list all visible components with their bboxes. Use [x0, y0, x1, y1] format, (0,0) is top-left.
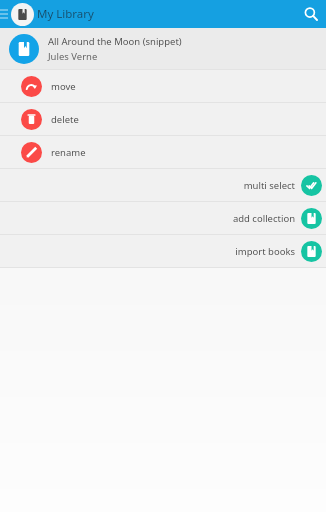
- button[interactable]: add collection: [0, 202, 326, 234]
- staticText: My Library: [37, 6, 94, 22]
- staticText: add collection: [232, 212, 295, 225]
- button[interactable]: All Around the Moon (snippet): [0, 28, 326, 69]
- staticText: All Around the Moon (snippet): [48, 35, 182, 48]
- button[interactable]: import books: [0, 235, 326, 267]
- button[interactable]: delete: [0, 103, 326, 135]
- staticText: import books: [235, 245, 295, 258]
- staticText: multi select: [243, 179, 295, 192]
- staticText: move: [51, 80, 76, 93]
- button[interactable]: multi select: [0, 169, 326, 201]
- button[interactable]: Search: [296, 0, 326, 28]
- staticText: delete: [51, 113, 79, 126]
- staticText: rename: [51, 146, 86, 159]
- button[interactable]: Open navigation drawer: [0, 0, 12, 28]
- button[interactable]: move: [0, 70, 326, 102]
- staticText: Jules Verne: [48, 50, 98, 63]
- button[interactable]: Library: [11, 3, 34, 26]
- button[interactable]: rename: [0, 136, 326, 168]
